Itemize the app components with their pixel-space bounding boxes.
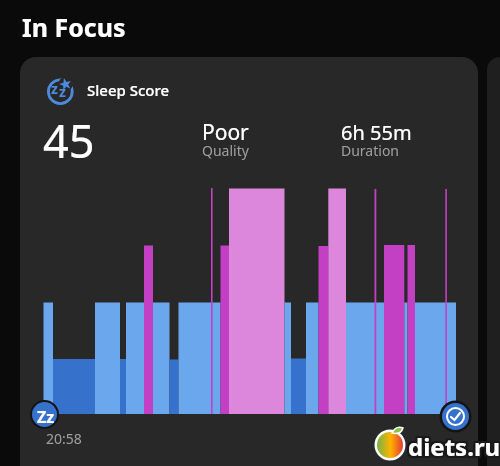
staticText: diets.ru	[407, 432, 500, 465]
staticText: diets.ru	[407, 428, 500, 461]
button[interactable]	[32, 402, 57, 427]
staticText: diets.ru	[406, 430, 499, 463]
staticText: diets.ru	[410, 432, 500, 465]
staticText: diets.ru	[408, 431, 500, 464]
staticText: diets.ru	[406, 429, 499, 462]
staticText: Quality	[202, 141, 249, 160]
staticText: 6h 55m	[341, 119, 412, 146]
staticText: Poor	[202, 118, 249, 147]
staticText: 20:58	[46, 429, 82, 448]
button[interactable]	[439, 400, 472, 433]
staticText: diets.ru	[408, 429, 500, 462]
staticText: Zz	[37, 406, 55, 428]
staticText: diets.ru	[408, 432, 500, 465]
staticText: diets.ru	[410, 431, 500, 464]
staticText: diets.ru	[406, 432, 499, 465]
staticText: diets.ru	[410, 428, 500, 461]
staticText: diets.ru	[409, 428, 500, 461]
staticText: diets.ru	[409, 430, 500, 463]
staticText: Sleep Score	[87, 80, 170, 100]
staticText: diets.ru	[410, 430, 500, 463]
staticText: z	[59, 82, 66, 101]
staticText: diets.ru	[407, 431, 500, 464]
button[interactable]	[20, 57, 478, 466]
staticText: diets.ru	[406, 428, 499, 461]
staticText: diets.ru	[409, 431, 500, 464]
staticText: 45	[43, 110, 95, 171]
staticText: diets.ru	[408, 428, 500, 461]
staticText: diets.ru	[409, 429, 500, 462]
staticText: diets.ru	[410, 429, 500, 462]
staticText: diets.ru	[407, 429, 500, 462]
staticText: z	[51, 79, 58, 98]
staticText: diets.ru	[409, 432, 500, 465]
staticText: Duration	[341, 141, 400, 160]
staticText: In Focus	[22, 10, 126, 44]
staticText: diets.ru	[406, 431, 499, 464]
staticText: diets.ru	[408, 430, 500, 463]
staticText: diets.ru	[407, 430, 500, 463]
